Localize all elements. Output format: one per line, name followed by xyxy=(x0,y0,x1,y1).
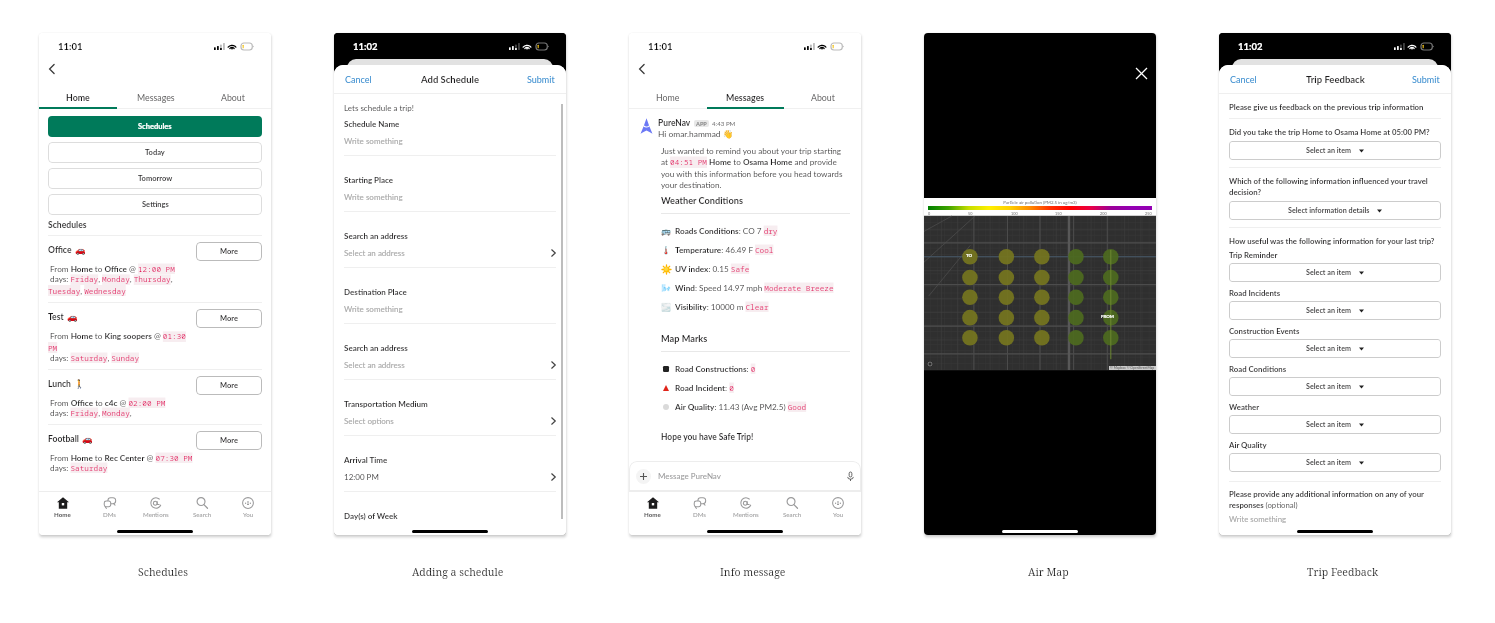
staticText: Select information details xyxy=(1288,206,1370,215)
staticText: Write something xyxy=(344,192,556,202)
staticText: Schedules xyxy=(138,122,172,131)
staticText: Submit xyxy=(1412,74,1440,85)
staticText: Road Conditions xyxy=(1229,364,1287,373)
staticText: 12:00 PM xyxy=(344,472,551,482)
button[interactable]: Back xyxy=(629,59,655,79)
staticText: 🌡 xyxy=(661,246,671,255)
staticText: 🌬 xyxy=(661,284,671,293)
staticText: About xyxy=(811,92,835,103)
button[interactable]: More xyxy=(196,242,262,261)
staticText: Schedule Name xyxy=(344,119,400,129)
staticText: You xyxy=(243,511,254,518)
button[interactable]: Schedules xyxy=(48,116,262,137)
button[interactable]: Transportation Medium xyxy=(344,399,556,435)
button[interactable]: Starting Place xyxy=(344,175,556,211)
staticText: Trip Reminder xyxy=(1229,250,1278,259)
button[interactable]: Select an item xyxy=(1229,141,1441,160)
button[interactable]: Close xyxy=(1136,68,1147,79)
button[interactable]: Tomorrow xyxy=(48,168,262,189)
staticText: Lets schedule a trip! xyxy=(344,103,414,113)
button[interactable]: Settings xyxy=(48,194,262,215)
staticText: Starting Place xyxy=(344,175,394,185)
staticText: 11:02 xyxy=(1238,41,1263,52)
staticText: 150 xyxy=(1055,211,1062,216)
staticText: Select an address xyxy=(344,360,551,370)
button[interactable]: Search an address xyxy=(344,231,556,267)
staticText: 🚌 xyxy=(661,227,671,236)
button[interactable]: Select an item xyxy=(1229,339,1441,358)
staticText: 250 xyxy=(1145,211,1152,216)
staticText: Hi omar.hammad 👋 xyxy=(658,129,734,139)
button[interactable]: Submit xyxy=(516,65,566,93)
staticText: UV index: 0.15 Safe xyxy=(675,264,750,274)
staticText: TO xyxy=(966,253,973,258)
staticText: From Home to Office @ 12:00 PM xyxy=(48,264,175,274)
staticText: Wind: Speed 14.97 mph Moderate Breeze xyxy=(675,283,834,293)
staticText: More xyxy=(220,314,238,323)
staticText: Football xyxy=(48,434,79,444)
staticText: Trip Feedback xyxy=(1306,74,1365,85)
button[interactable]: Home xyxy=(39,492,86,523)
staticText: Mentions xyxy=(733,511,759,518)
button[interactable]: Search xyxy=(769,492,815,523)
button[interactable]: About xyxy=(194,87,271,107)
staticText: days: Saturday xyxy=(48,463,108,473)
staticText: Transportation Medium xyxy=(344,399,428,409)
staticText: DMs xyxy=(693,511,707,518)
staticText: Messages xyxy=(137,92,175,103)
staticText: Day(s) of Week xyxy=(344,511,398,521)
button[interactable]: Select an item xyxy=(1229,377,1441,396)
button[interactable]: Destination Place xyxy=(344,287,556,323)
staticText: Add Schedule xyxy=(421,74,479,85)
staticText: Road Incidents xyxy=(1229,288,1281,297)
button[interactable]: You xyxy=(225,492,271,523)
button[interactable]: Select information details xyxy=(1229,201,1441,220)
staticText: Today xyxy=(145,148,165,157)
staticText: You xyxy=(833,511,844,518)
button[interactable]: DMs xyxy=(676,492,723,523)
button[interactable]: Voice message xyxy=(847,472,854,481)
button[interactable]: More xyxy=(196,431,262,450)
button[interactable]: Select an item xyxy=(1229,453,1441,472)
button[interactable]: More xyxy=(196,309,262,328)
button[interactable]: Cancel xyxy=(1219,65,1268,93)
button[interactable]: Schedule Name xyxy=(344,119,556,155)
staticText: Search an address xyxy=(344,231,408,241)
staticText: 🚗 xyxy=(75,245,86,255)
staticText: From Home to King soopers @ 01:30 PM xyxy=(48,331,193,353)
button[interactable]: Select an item xyxy=(1229,301,1441,320)
button[interactable]: Submit xyxy=(1401,65,1451,93)
button[interactable]: Back xyxy=(39,59,65,79)
button[interactable]: About xyxy=(784,87,861,107)
button[interactable]: You xyxy=(815,492,861,523)
staticText: Office xyxy=(48,245,72,255)
button[interactable]: DMs xyxy=(86,492,133,523)
button[interactable]: Messages xyxy=(707,87,784,107)
button[interactable]: Select an item xyxy=(1229,415,1441,434)
button[interactable]: Arrival Time xyxy=(344,455,556,491)
staticText: Select an item xyxy=(1306,268,1352,277)
staticText: DMs xyxy=(103,511,117,518)
button[interactable]: Select an item xyxy=(1229,263,1441,282)
button[interactable]: Add attachment xyxy=(636,469,651,484)
button[interactable]: Home xyxy=(39,87,117,107)
staticText: Visibility: 10000 m Clear xyxy=(675,302,769,312)
staticText: Message PureNav xyxy=(658,471,847,481)
button[interactable]: Mentions xyxy=(723,492,769,523)
staticText: Search xyxy=(783,511,802,518)
button[interactable]: Cancel xyxy=(334,65,383,93)
button[interactable]: More xyxy=(196,376,262,395)
button[interactable]: Home xyxy=(629,87,707,107)
staticText: Test xyxy=(48,312,64,322)
button[interactable]: Home xyxy=(629,492,676,523)
staticText: Lunch xyxy=(48,379,71,389)
staticText: Arrival Time xyxy=(344,455,388,465)
button[interactable]: Messages xyxy=(117,87,194,107)
button[interactable]: Search xyxy=(179,492,225,523)
button[interactable]: Search an address xyxy=(344,343,556,379)
staticText: Select an address xyxy=(344,248,551,258)
staticText: Did you take the trip Home to Osama Home… xyxy=(1229,127,1430,136)
button[interactable]: Today xyxy=(48,142,262,163)
button[interactable]: Mentions xyxy=(133,492,179,523)
staticText: More xyxy=(220,247,238,256)
